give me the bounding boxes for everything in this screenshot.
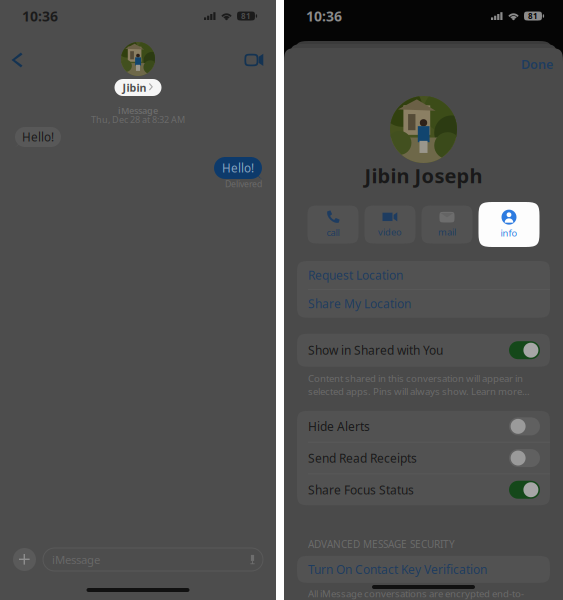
staticText: Request Location	[308, 267, 403, 283]
staticText: Jibin	[122, 80, 146, 95]
button[interactable]: Turn on	[509, 417, 540, 435]
staticText: Share My Location	[308, 295, 411, 312]
button[interactable]: FaceTime	[239, 45, 269, 75]
staticText: mail	[438, 226, 456, 238]
staticText: All iMessage conversations are encrypted…	[308, 587, 524, 600]
button[interactable]: Turn off	[509, 481, 540, 499]
button[interactable]: Add attachment	[13, 548, 36, 571]
staticText: Show in Shared with You	[308, 342, 443, 358]
button[interactable]: video	[364, 205, 415, 243]
staticText: Hello!	[222, 160, 254, 176]
button[interactable]: Jibin	[114, 79, 161, 96]
button[interactable]: Turn on	[509, 449, 540, 467]
staticText: call	[326, 226, 339, 239]
staticText: Send Read Receipts	[308, 450, 417, 466]
staticText: 10:36	[306, 6, 342, 26]
staticText: iMessage	[118, 104, 158, 117]
staticText: Share Focus Status	[308, 482, 414, 498]
button[interactable]: Show in Shared with You	[297, 334, 550, 367]
staticText: Delivered	[225, 178, 262, 190]
button[interactable]: mail	[421, 205, 472, 243]
button[interactable]: info	[478, 202, 539, 247]
button[interactable]: Request Location	[297, 261, 550, 289]
staticText: Hide Alerts	[308, 418, 370, 434]
staticText: Jibin Joseph	[364, 162, 482, 189]
staticText: iMessage	[52, 552, 100, 567]
button[interactable]: Back	[2, 45, 32, 75]
button[interactable]: Send Read Receipts	[297, 443, 550, 474]
staticText: Content shared in this conversation will…	[308, 372, 530, 398]
staticText: Turn On Contact Key Verification	[308, 561, 487, 577]
button[interactable]: Done	[516, 56, 558, 72]
staticText: info	[500, 227, 517, 239]
staticText: Thu, Dec 28 at 8:32 AM	[91, 113, 185, 126]
button[interactable]: Turn On Contact Key Verification	[297, 556, 550, 583]
button[interactable]: Share My Location	[297, 290, 550, 318]
staticText: 10:36	[22, 6, 58, 26]
staticText: 81	[241, 11, 251, 21]
staticText: Done	[521, 55, 553, 73]
button[interactable]: Hide Alerts	[297, 411, 550, 442]
button[interactable]: Share Focus Status	[297, 474, 550, 505]
staticText: video	[378, 226, 402, 238]
staticText: 81	[528, 11, 538, 21]
button[interactable]: call	[307, 205, 358, 243]
staticText: ADVANCED MESSAGE SECURITY	[308, 537, 455, 551]
button[interactable]: Turn off	[509, 341, 540, 359]
staticText: Hello!	[22, 129, 54, 145]
